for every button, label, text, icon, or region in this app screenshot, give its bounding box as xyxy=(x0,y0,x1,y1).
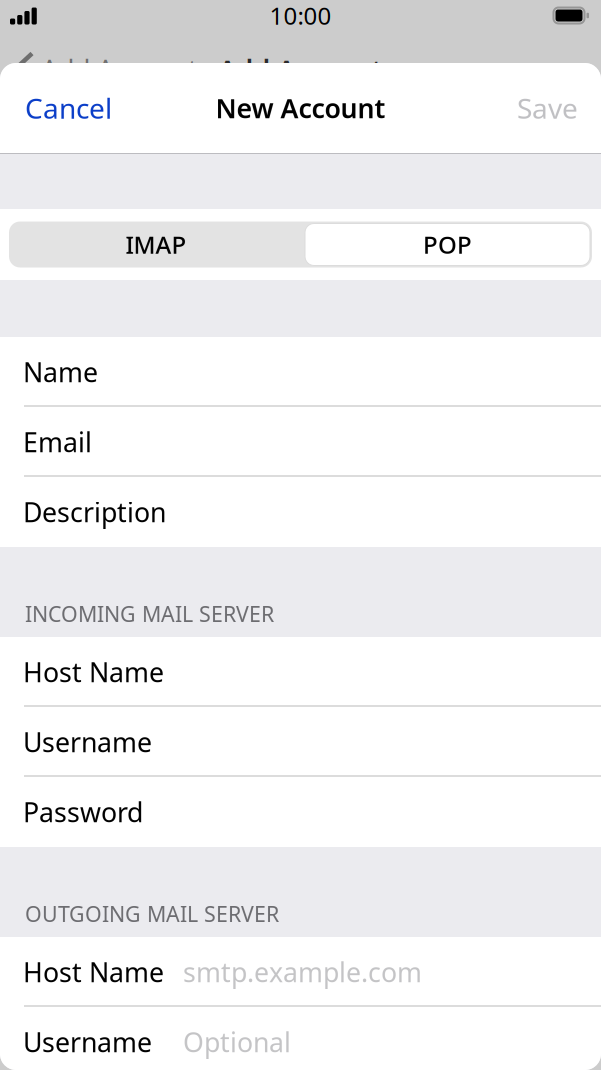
staticText: Save xyxy=(517,89,578,127)
button[interactable]: Save xyxy=(501,71,601,145)
button[interactable]: IMAP xyxy=(9,221,303,267)
button[interactable]: Description xyxy=(0,477,601,547)
button[interactable]: Email xyxy=(0,407,601,477)
button[interactable]: POP xyxy=(303,221,592,267)
staticText: Username xyxy=(23,1024,152,1060)
staticText: POP xyxy=(423,229,472,260)
staticText: OUTGOING MAIL SERVER xyxy=(25,900,279,928)
staticText: New Account xyxy=(215,90,385,126)
button[interactable]: Host Name xyxy=(0,937,601,1007)
staticText: Description xyxy=(23,494,166,530)
staticText: Name xyxy=(23,354,98,390)
staticText: Add Account xyxy=(41,52,198,87)
button[interactable]: Username xyxy=(0,707,601,777)
staticText: Email xyxy=(23,424,92,460)
staticText: INCOMING MAIL SERVER xyxy=(25,600,274,628)
button[interactable]: Host Name xyxy=(0,637,601,707)
button[interactable]: Name xyxy=(0,337,601,407)
button[interactable]: Password xyxy=(0,777,601,847)
staticText: Cancel xyxy=(25,89,112,127)
button[interactable]: Username xyxy=(0,1007,601,1070)
staticText: Password xyxy=(23,794,143,830)
staticText: Username xyxy=(23,724,152,760)
staticText: Host Name xyxy=(23,654,164,690)
button[interactable]: Cancel xyxy=(0,71,128,145)
staticText: Optional xyxy=(183,1024,291,1060)
staticText: Host Name xyxy=(23,954,164,990)
staticText: 10:00 xyxy=(269,0,331,31)
staticText: Add Account xyxy=(218,52,382,87)
staticText: smtp.example.com xyxy=(183,954,422,990)
staticText: IMAP xyxy=(125,229,186,260)
